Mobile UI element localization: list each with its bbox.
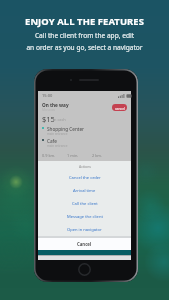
staticText: $15 <box>42 114 55 124</box>
staticText: Cancel the order <box>69 175 101 181</box>
staticText: 15:00 <box>42 93 53 98</box>
button[interactable]: Cancel the order <box>38 171 131 184</box>
button[interactable]: Call the client <box>38 197 131 210</box>
staticText: main entrance <box>47 144 68 148</box>
staticText: Open in navigator <box>67 227 102 233</box>
staticText: Message the client <box>67 214 103 220</box>
staticText: Actions <box>79 164 91 169</box>
staticText: main entrance <box>47 132 68 136</box>
staticText: 2 km. <box>92 153 102 158</box>
button[interactable]: Cafe <box>38 138 131 148</box>
staticText: Shopping Center <box>47 126 85 132</box>
button[interactable]: Cancel <box>38 238 131 250</box>
button[interactable]: Open in navigator <box>38 223 131 236</box>
staticText: ENJOY ALL THE FEATURES <box>0 15 169 28</box>
staticText: cancel <box>115 106 125 110</box>
staticText: 0.9 km. <box>42 153 56 158</box>
staticText: Cafe <box>47 138 57 144</box>
button[interactable]: Shopping Center <box>38 126 131 136</box>
staticText: Call the client <box>72 201 98 207</box>
button[interactable]: Message the client <box>38 210 131 223</box>
button[interactable]: Arrival time <box>38 184 131 197</box>
staticText: Cancel <box>77 241 92 247</box>
staticText: Moscow <box>42 107 56 112</box>
staticText: Arrival time <box>73 188 96 194</box>
staticText: 1 min. <box>67 153 79 158</box>
staticText: in cash <box>53 117 66 122</box>
staticText: Call the client from the app, edit an or… <box>0 31 169 52</box>
button[interactable]: cancel <box>112 104 127 111</box>
staticText: On the way <box>42 102 69 108</box>
